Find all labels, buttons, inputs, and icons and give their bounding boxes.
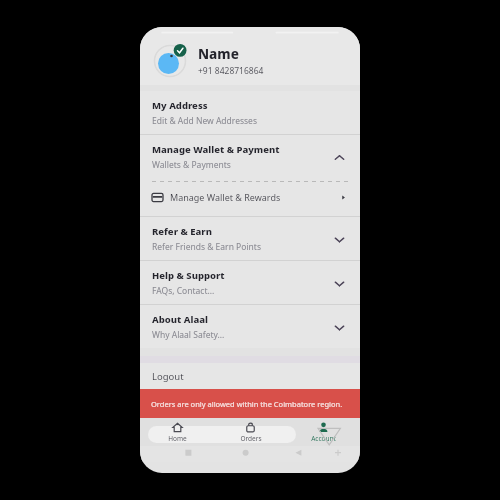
other: Expand <box>330 318 348 336</box>
button[interactable]: Manage Wallet & Payment <box>140 135 360 178</box>
staticText: FAQs, Contact... <box>152 285 215 297</box>
staticText: Refer & Earn <box>152 225 212 238</box>
staticText: Manage Wallet & Payment <box>152 143 280 156</box>
staticText: Manage Wallet & Rewards <box>170 191 281 203</box>
button[interactable]: Name <box>140 36 360 85</box>
staticText: Account <box>311 434 336 443</box>
staticText: Refer Friends & Earn Points <box>152 241 261 253</box>
button[interactable]: Help & Support <box>140 261 360 304</box>
staticText: Why Alaal Safety... <box>152 329 225 341</box>
button[interactable]: Logout <box>140 363 360 389</box>
staticText: Home <box>168 434 187 443</box>
staticText: +91 8428716864 <box>198 65 264 77</box>
staticText: Logout <box>152 370 184 383</box>
staticText: About Alaal <box>152 313 208 326</box>
button[interactable]: My Address <box>140 91 360 134</box>
button[interactable]: Account <box>287 418 360 446</box>
staticText: Orders are only allowed within the Coimb… <box>151 399 343 409</box>
staticText: Name <box>198 45 239 63</box>
button[interactable]: Manage Wallet & Rewards <box>140 185 360 209</box>
other: Expand <box>330 274 348 292</box>
other: Expand <box>330 230 348 248</box>
staticText: Help & Support <box>152 269 225 282</box>
button[interactable]: Home <box>140 418 214 446</box>
other: Collapse <box>330 148 348 166</box>
staticText: My Address <box>152 99 208 112</box>
button[interactable]: Refer & Earn <box>140 217 360 260</box>
staticText: Orders <box>240 434 262 443</box>
staticText: Edit & Add New Addresses <box>152 115 257 127</box>
button[interactable]: About Alaal <box>140 305 360 348</box>
staticText: Wallets & Payments <box>152 159 231 171</box>
button[interactable]: Orders <box>214 418 287 446</box>
